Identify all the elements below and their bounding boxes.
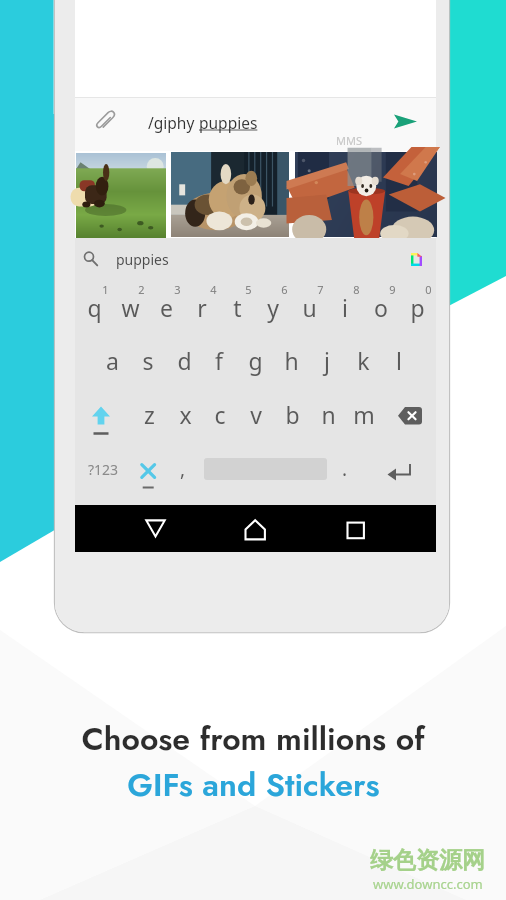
button[interactable]: j xyxy=(309,335,345,387)
button[interactable]: g xyxy=(237,335,273,387)
button[interactable]: ?123 xyxy=(81,449,125,489)
button[interactable]: Emoji xyxy=(130,445,166,489)
staticText: 9 xyxy=(389,282,396,297)
button[interactable]: 1 xyxy=(76,282,112,334)
staticText: Choose from millions of xyxy=(81,716,425,762)
staticText: h xyxy=(284,345,299,376)
staticText: 4 xyxy=(210,282,217,297)
button[interactable]: Shift xyxy=(79,389,124,441)
staticText: d xyxy=(177,345,192,376)
button[interactable]: z xyxy=(131,389,167,441)
staticText: x xyxy=(179,399,192,430)
staticText: r xyxy=(197,292,207,323)
button[interactable]: f xyxy=(201,335,237,387)
button[interactable]: b xyxy=(274,389,310,441)
staticText: y xyxy=(267,292,279,323)
button[interactable]: v xyxy=(238,389,274,441)
staticText: puppies xyxy=(116,250,169,269)
staticText: . xyxy=(342,456,348,482)
staticText: c xyxy=(214,399,226,430)
button[interactable] xyxy=(171,152,289,237)
button[interactable]: x xyxy=(167,389,203,441)
staticText: 0 xyxy=(425,282,432,297)
button[interactable]: 9 xyxy=(363,282,399,334)
button[interactable] xyxy=(76,153,166,238)
button[interactable]: 3 xyxy=(148,282,184,334)
staticText: 2 xyxy=(138,282,145,297)
button[interactable]: 6 xyxy=(255,282,291,334)
button[interactable]: l xyxy=(381,335,417,387)
button[interactable]: 4 xyxy=(184,282,220,334)
staticText: /giphy xyxy=(148,112,199,133)
staticText: q xyxy=(87,292,102,323)
staticText: e xyxy=(160,292,173,323)
staticText: 6 xyxy=(281,282,288,297)
staticText: o xyxy=(374,292,388,323)
button[interactable] xyxy=(295,152,437,237)
button[interactable]: Home xyxy=(235,511,276,546)
staticText: ?123 xyxy=(88,460,119,479)
button[interactable]: 0 xyxy=(399,282,435,334)
staticText: MMS xyxy=(336,133,362,148)
staticText: u xyxy=(302,292,317,323)
button[interactable]: c xyxy=(202,389,238,441)
staticText: f xyxy=(215,345,223,376)
button[interactable]: . xyxy=(332,449,358,489)
button[interactable]: 2 xyxy=(112,282,148,334)
button[interactable]: Back xyxy=(135,511,176,546)
staticText: j xyxy=(324,345,330,376)
staticText: 1 xyxy=(102,282,109,297)
button[interactable]: k xyxy=(345,335,381,387)
staticText: 8 xyxy=(353,282,360,297)
staticText: w xyxy=(121,292,140,323)
staticText: 5 xyxy=(245,282,252,297)
staticText: k xyxy=(357,345,370,376)
button[interactable]: Attach xyxy=(75,97,436,151)
other: Send xyxy=(394,114,417,129)
staticText: 绿色资源网 xyxy=(370,846,485,875)
other: Attach xyxy=(94,110,116,132)
button[interactable]: s xyxy=(130,335,166,387)
button[interactable]: puppies xyxy=(75,238,436,279)
button[interactable]: 5 xyxy=(219,282,255,334)
staticText: www.downcc.com xyxy=(373,875,483,893)
staticText: a xyxy=(106,345,119,376)
staticText: 3 xyxy=(174,282,181,297)
staticText: z xyxy=(144,399,155,430)
button[interactable]: m xyxy=(346,389,382,441)
staticText: n xyxy=(321,399,336,430)
staticText: l xyxy=(396,345,402,376)
other: Giphy xyxy=(411,253,422,266)
button[interactable]: , xyxy=(168,449,198,489)
staticText: GIFs and Stickers xyxy=(127,762,380,808)
staticText: puppies xyxy=(199,112,258,133)
button[interactable]: n xyxy=(310,389,346,441)
staticText: v xyxy=(250,399,262,430)
staticText: 7 xyxy=(317,282,324,297)
button[interactable]: d xyxy=(166,335,202,387)
button[interactable]: Enter xyxy=(381,452,418,490)
staticText: , xyxy=(180,456,186,482)
button[interactable]: h xyxy=(273,335,309,387)
staticText: t xyxy=(233,292,242,323)
button[interactable]: a xyxy=(94,335,130,387)
button[interactable]: 8 xyxy=(327,282,363,334)
staticText: b xyxy=(285,399,300,430)
staticText: g xyxy=(248,345,263,376)
staticText: p xyxy=(410,292,425,323)
staticText: i xyxy=(342,292,348,323)
staticText: s xyxy=(142,345,154,376)
button[interactable]: 7 xyxy=(291,282,327,334)
button[interactable]: Recent apps xyxy=(336,511,376,546)
button[interactable]: Backspace xyxy=(385,389,435,441)
staticText: m xyxy=(353,399,375,430)
